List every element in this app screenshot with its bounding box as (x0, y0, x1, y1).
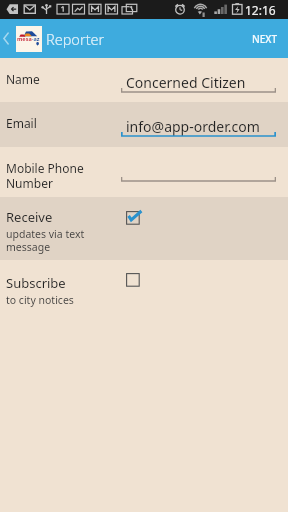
staticText: Concerned Citizen (126, 73, 246, 92)
button[interactable]: Subscribe (0, 260, 288, 512)
staticText: NEXT (252, 32, 278, 46)
button[interactable]: Mobile Phone Number (0, 147, 288, 197)
staticText: updates via text message (6, 227, 85, 254)
staticText: to city notices (6, 293, 74, 307)
staticText: ·az (32, 35, 40, 42)
staticText: mesa (17, 35, 32, 42)
staticText: Subscribe (6, 274, 66, 292)
button[interactable]: Name (0, 58, 288, 102)
staticText: Reporter (46, 29, 105, 49)
staticText: Email (6, 115, 118, 131)
staticText: Name (6, 71, 118, 87)
staticText: Receive (6, 208, 53, 226)
button[interactable]: Receive (0, 197, 288, 260)
button[interactable]: NEXT (252, 19, 278, 58)
staticText: 12:16 (245, 2, 276, 18)
staticText: Mobile Phone Number (6, 160, 118, 191)
button[interactable]: Email (0, 102, 288, 147)
button[interactable]: Navigate up (0, 19, 16, 58)
staticText: info@app-order.com (126, 117, 260, 136)
